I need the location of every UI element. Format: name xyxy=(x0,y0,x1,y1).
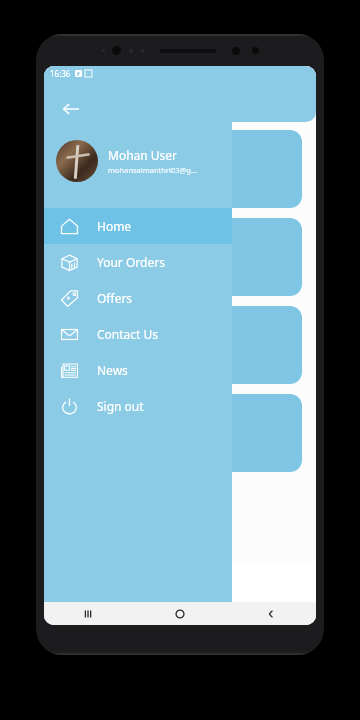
staticText: Your Orders xyxy=(97,254,165,270)
button[interactable]: Offers xyxy=(44,280,232,316)
staticText: Contact Us xyxy=(97,326,159,342)
staticText: f xyxy=(77,70,80,77)
button[interactable]: Place Order xyxy=(58,130,302,208)
staticText: Home xyxy=(97,218,132,234)
button[interactable]: recents xyxy=(44,602,134,625)
staticText: Place Order xyxy=(141,160,220,179)
button[interactable]: Open navigation menu xyxy=(58,81,98,121)
staticText: Mohan User xyxy=(108,147,178,163)
button[interactable] xyxy=(58,306,302,384)
staticText: mohansaimanthri03@g... xyxy=(108,165,197,175)
staticText: Offers xyxy=(97,290,133,306)
button[interactable]: home xyxy=(134,602,225,625)
button[interactable]: back xyxy=(225,602,316,625)
button[interactable]: Your Orders xyxy=(44,244,232,280)
button[interactable]: Back xyxy=(54,92,88,126)
button[interactable]: Place ... xyxy=(58,218,302,296)
button[interactable]: Home xyxy=(44,208,232,244)
staticText: News xyxy=(97,362,128,378)
staticText: 16:36 xyxy=(50,68,71,79)
button[interactable]: Sign out xyxy=(44,388,232,424)
button[interactable]: News xyxy=(44,352,232,388)
button[interactable]: Request ID xyxy=(58,394,302,472)
staticText: Sign out xyxy=(97,398,144,414)
button[interactable]: Contact Us xyxy=(44,316,232,352)
staticText: Place ... xyxy=(155,248,206,267)
